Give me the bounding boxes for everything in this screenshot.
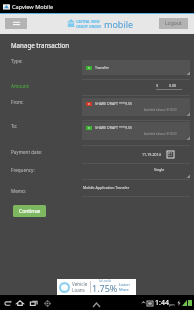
staticText: From: <box>11 99 24 105</box>
staticText: More <box>119 287 129 292</box>
button[interactable]: SHARE DRAFT ***9.55 <box>82 98 190 116</box>
button[interactable]: Logout <box>159 18 188 29</box>
staticText: Available balance $100.00 <box>144 108 177 112</box>
staticText: Manage transaction <box>11 41 70 49</box>
staticText: Payment date: <box>11 149 43 155</box>
staticText: 0.00 <box>169 83 177 88</box>
staticText: Single <box>154 167 165 172</box>
button[interactable]: Back <box>2 297 14 309</box>
staticText: Available balance $100.00 <box>144 132 177 136</box>
staticText: Mobile Application Transfer <box>83 185 130 190</box>
staticText: Transfer <box>95 65 109 70</box>
button[interactable]: Vehicle Loans ad <box>57 279 136 295</box>
staticText: Type: <box>11 58 23 64</box>
staticText: Frequency: <box>11 167 35 173</box>
button[interactable]: Transfer <box>82 60 190 75</box>
staticText: As Low As <box>99 279 112 283</box>
button[interactable]: Home <box>14 297 26 309</box>
staticText: Amount: <box>11 83 30 89</box>
staticText: 1.75% <box>92 282 118 294</box>
staticText: Memo: <box>11 188 27 194</box>
staticText: SHARE DRAFT ***9.55 <box>95 101 133 106</box>
staticText: Loans <box>72 287 85 293</box>
button[interactable]: Menu <box>5 18 27 29</box>
staticText: SHARE DRAFT ***9.55 <box>95 125 133 130</box>
staticText: pm <box>169 302 175 307</box>
staticText: 11-19-2014 <box>142 152 161 157</box>
button[interactable]: Continue <box>13 205 46 217</box>
button[interactable]: 11-19-2014 <box>82 146 190 162</box>
staticText: Learn <box>119 282 130 287</box>
staticText: $ <box>156 83 159 88</box>
staticText: Capview Mobile <box>12 3 54 11</box>
staticText: Logout <box>165 20 182 27</box>
button[interactable]: Screenshot <box>41 297 53 309</box>
button[interactable] <box>82 80 190 94</box>
staticText: CAPITAL VIEW <box>76 19 100 24</box>
staticText: To: <box>11 123 18 129</box>
staticText: 1:44 <box>155 298 169 308</box>
staticText: mobile <box>104 18 134 29</box>
staticText: Vehicle <box>72 281 88 287</box>
button[interactable]: SHARE DRAFT ***9.55 <box>82 122 190 140</box>
button[interactable]: Recent apps <box>28 297 40 309</box>
staticText: CREDIT UNION <box>76 24 102 29</box>
button[interactable]: Single <box>82 164 190 178</box>
staticText: Continue <box>19 208 41 215</box>
